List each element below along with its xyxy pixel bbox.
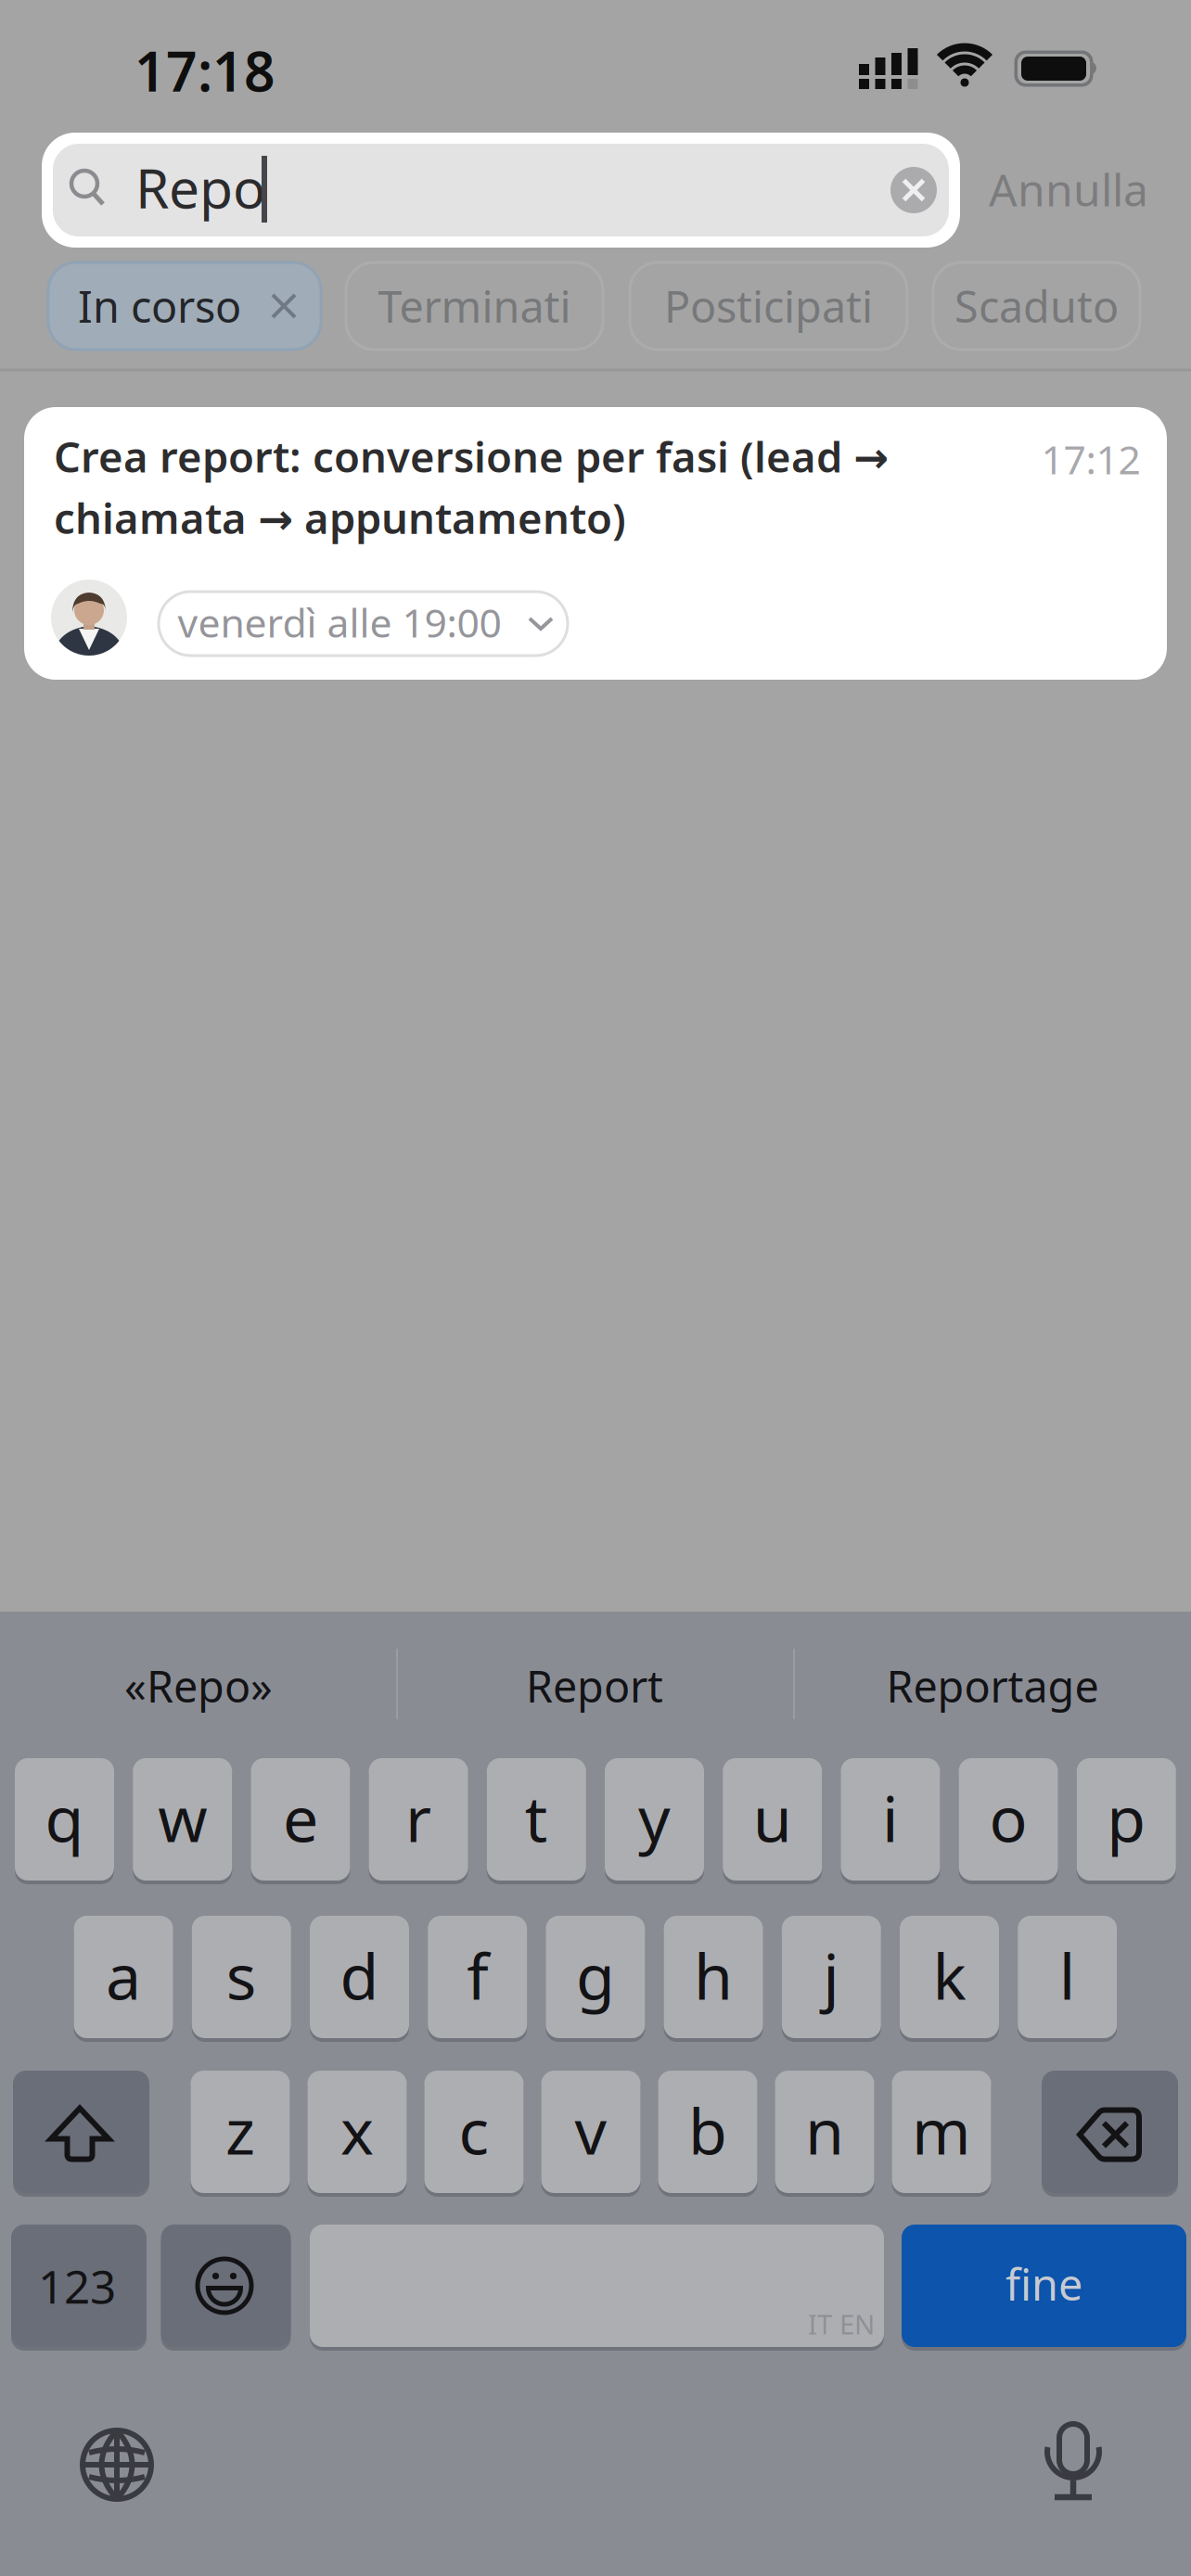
button[interactable]: y <box>605 1758 704 1881</box>
button[interactable]: «Repo» <box>124 1657 273 1715</box>
button[interactable]: j <box>782 1916 881 2038</box>
button[interactable]: Cancella testo <box>890 167 937 213</box>
staticText: r <box>405 1776 431 1859</box>
button[interactable]: a <box>74 1916 173 2038</box>
staticText: k <box>933 1933 966 2017</box>
button[interactable]: r <box>369 1758 468 1881</box>
button[interactable]: q <box>15 1758 114 1881</box>
staticText: m <box>912 2088 971 2172</box>
staticText: l <box>1059 1933 1076 2017</box>
staticText: v <box>575 2088 607 2172</box>
staticText: Repo <box>135 151 265 223</box>
staticText: t <box>525 1776 548 1859</box>
button[interactable]: g <box>546 1916 645 2038</box>
staticText: h <box>694 1933 733 2017</box>
button[interactable]: fine <box>902 2225 1186 2347</box>
button[interactable]: v <box>541 2071 640 2193</box>
button[interactable]: In corso <box>48 262 321 350</box>
button[interactable]: Campo di ricerca <box>42 133 960 248</box>
button[interactable]: Cambia tastiera <box>80 2428 154 2502</box>
staticText: d <box>340 1933 379 2017</box>
button[interactable]: f <box>428 1916 527 2038</box>
button[interactable]: d <box>310 1916 409 2038</box>
staticText: 17:12 <box>1041 433 1140 485</box>
button[interactable]: Terminati <box>346 262 603 350</box>
button[interactable]: n <box>775 2071 874 2193</box>
staticText: u <box>753 1776 792 1859</box>
button[interactable]: l <box>1018 1916 1117 2038</box>
staticText: Annulla <box>989 160 1148 219</box>
button[interactable]: t <box>487 1758 586 1881</box>
staticText: z <box>225 2088 255 2172</box>
button[interactable]: u <box>723 1758 822 1881</box>
button[interactable]: c <box>424 2071 524 2193</box>
button[interactable]: Scaduto <box>933 262 1140 350</box>
button[interactable]: Emoji <box>161 2225 291 2347</box>
button[interactable]: x <box>307 2071 407 2193</box>
button[interactable]: s <box>192 1916 291 2038</box>
button[interactable]: Reportage <box>886 1657 1099 1715</box>
staticText: a <box>106 1933 141 2017</box>
staticText: f <box>467 1933 488 2017</box>
staticText: n <box>805 2088 844 2172</box>
staticText: e <box>283 1776 318 1859</box>
staticText: x <box>340 2088 374 2172</box>
button[interactable]: Maiuscole <box>13 2071 149 2193</box>
staticText: i <box>882 1776 899 1859</box>
staticText: 123 <box>38 2255 116 2316</box>
staticText: venerdì alle 19:00 <box>178 596 501 649</box>
staticText: Report <box>526 1657 663 1715</box>
staticText: IT EN <box>808 2306 875 2342</box>
button[interactable]: w <box>133 1758 232 1881</box>
staticText: o <box>989 1776 1027 1859</box>
staticText: s <box>226 1933 257 2017</box>
button[interactable]: p <box>1077 1758 1176 1881</box>
staticText: Terminati <box>378 277 571 335</box>
button[interactable]: Posticipati <box>630 262 907 350</box>
staticText: Scaduto <box>954 277 1119 335</box>
staticText: w <box>158 1776 207 1859</box>
button[interactable]: e <box>251 1758 350 1881</box>
staticText: Reportage <box>886 1657 1099 1715</box>
button[interactable]: i <box>841 1758 940 1881</box>
staticText: In corso <box>78 277 241 335</box>
staticText: q <box>45 1776 84 1859</box>
button[interactable]: Annulla <box>989 160 1148 219</box>
staticText: y <box>638 1776 671 1859</box>
button[interactable]: Crea report: conversione per fasi (lead … <box>24 407 1167 680</box>
staticText: b <box>688 2088 727 2172</box>
button[interactable]: Cancella <box>1042 2071 1178 2193</box>
staticText: Posticipati <box>664 277 873 335</box>
button[interactable]: Report <box>526 1657 663 1715</box>
staticText: g <box>576 1933 615 2017</box>
button[interactable]: venerdì alle 19:00 <box>159 592 568 656</box>
staticText: c <box>459 2088 489 2172</box>
staticText: 17:18 <box>134 34 275 107</box>
button[interactable]: b <box>658 2071 757 2193</box>
button[interactable]: Dettatura <box>1047 2418 1099 2500</box>
button[interactable]: k <box>900 1916 999 2038</box>
button[interactable]: z <box>191 2071 290 2193</box>
button[interactable]: h <box>664 1916 763 2038</box>
staticText: j <box>823 1933 840 2017</box>
button[interactable]: Numeri <box>11 2225 147 2347</box>
staticText: «Repo» <box>124 1657 273 1715</box>
button[interactable]: m <box>892 2071 991 2193</box>
staticText: Crea report: conversione per fasi (lead … <box>54 428 889 545</box>
staticText: p <box>1107 1776 1146 1859</box>
button[interactable]: o <box>959 1758 1058 1881</box>
staticText: fine <box>1005 2255 1082 2313</box>
